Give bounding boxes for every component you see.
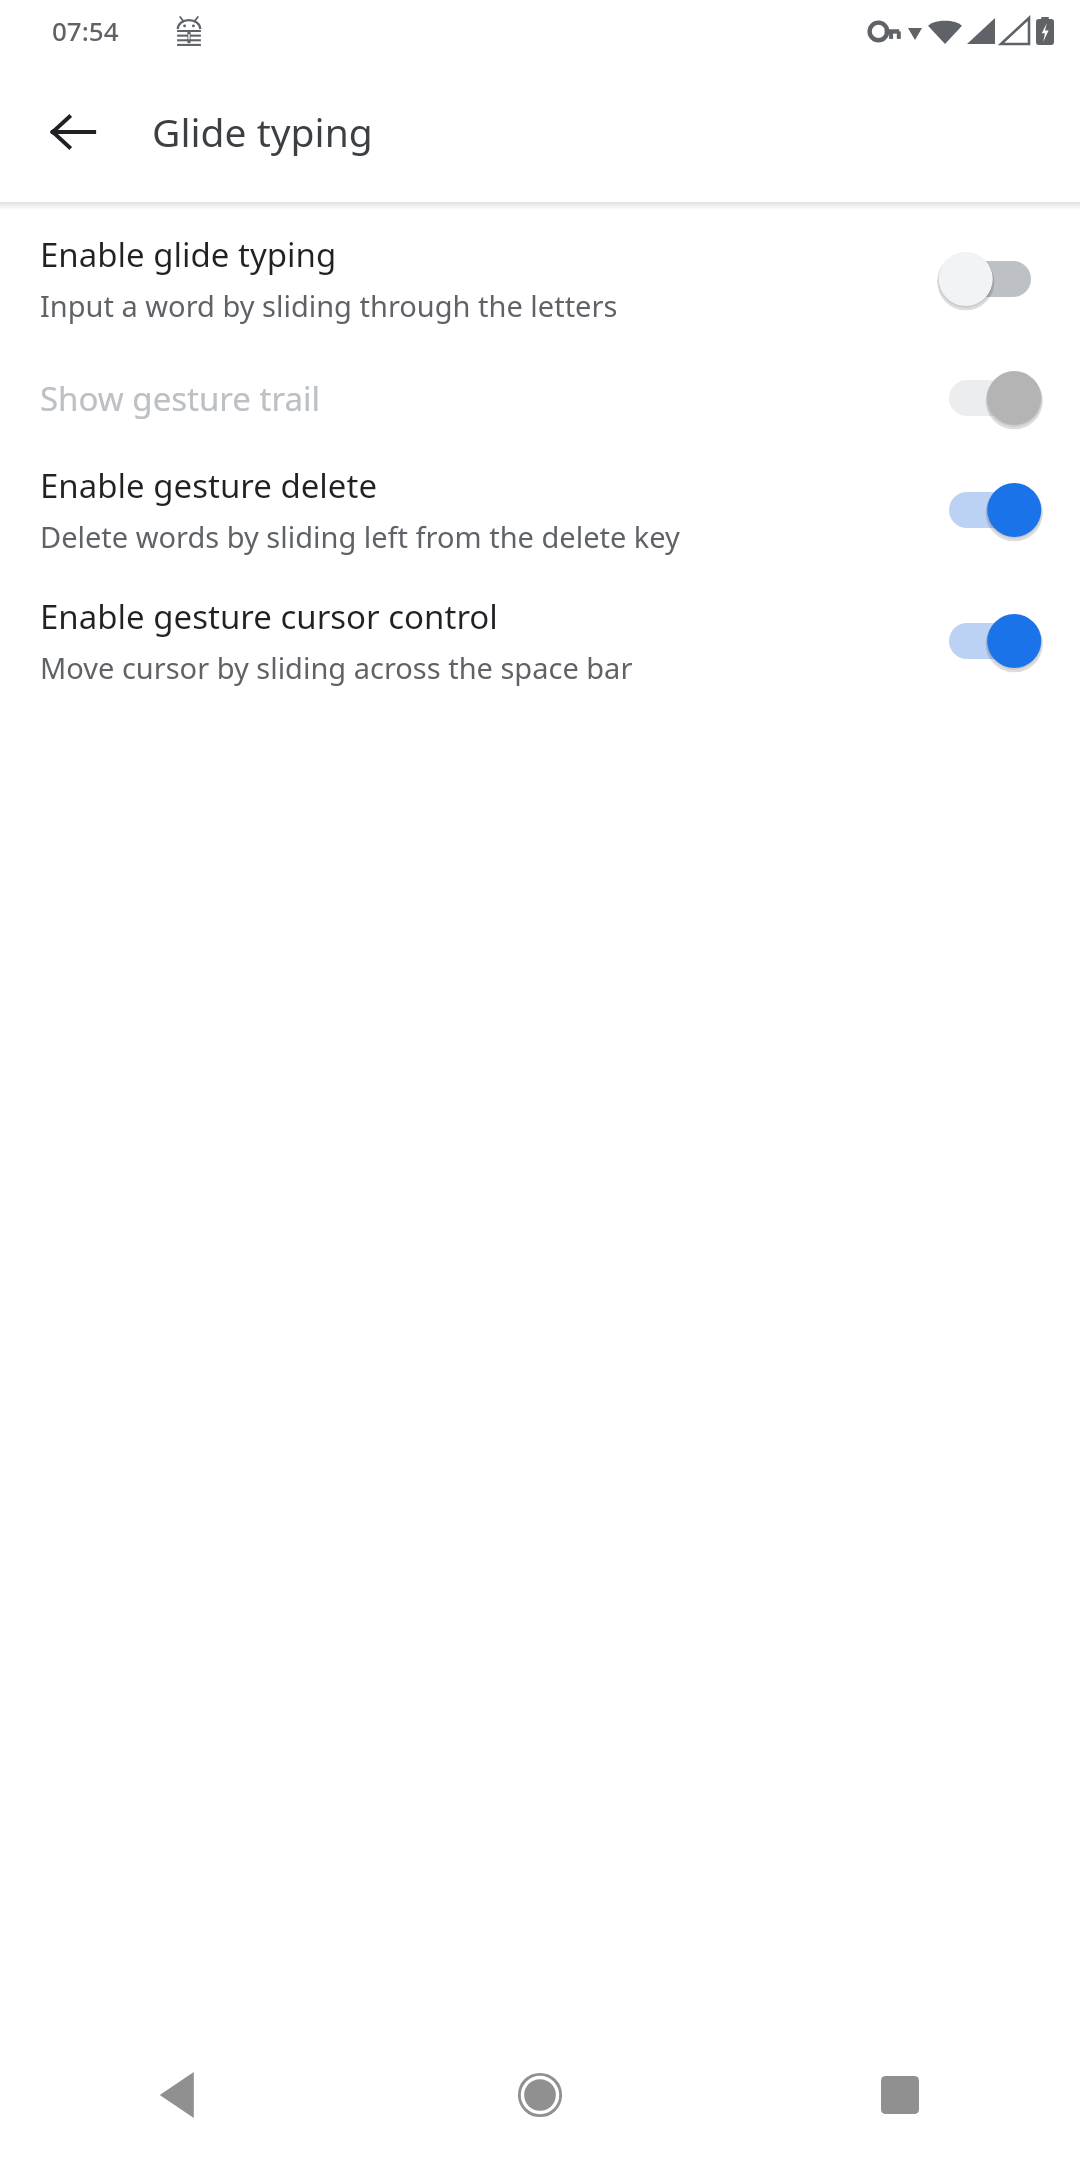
button[interactable]: Home [360,2058,720,2132]
staticText: Glide typing [152,105,373,158]
button[interactable]: Toggle [938,475,1042,545]
button[interactable]: Show gesture trail [0,363,1080,433]
button[interactable]: Enable glide typing [0,232,1080,325]
staticText: Move cursor by sliding across the space … [40,648,633,687]
staticText: Delete words by sliding left from the de… [40,517,680,556]
button[interactable]: Back [0,2058,360,2132]
staticText: Enable glide typing [40,232,337,277]
button[interactable]: Toggle [938,606,1042,676]
staticText: 07:54 [52,13,119,48]
staticText: Enable gesture cursor control [40,594,498,639]
staticText: Show gesture trail [40,376,320,421]
button[interactable]: Enable gesture cursor control [0,594,1080,687]
staticText: Enable gesture delete [40,463,377,508]
button[interactable]: Back [25,84,121,180]
staticText: Input a word by sliding through the lett… [40,286,618,325]
button[interactable]: Toggle [938,244,1042,314]
button[interactable]: Recent apps [720,2058,1080,2132]
button[interactable]: Enable gesture delete [0,463,1080,556]
button[interactable]: Toggle [938,363,1042,433]
